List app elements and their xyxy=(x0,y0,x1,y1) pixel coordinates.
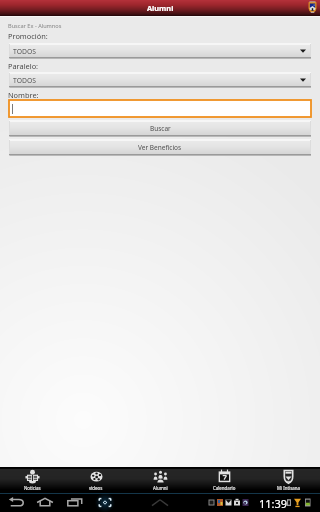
button[interactable]: Home xyxy=(33,495,57,510)
staticText: TODOS xyxy=(13,76,36,85)
staticText: Alumni xyxy=(147,3,174,13)
staticText: TODOS xyxy=(13,47,36,56)
button[interactable]: TODOS xyxy=(9,43,311,59)
button[interactable]: Screenshot xyxy=(93,495,117,510)
button[interactable]: Back xyxy=(4,495,28,510)
staticText: Alumni xyxy=(153,485,168,491)
button[interactable]: Mi Intisana xyxy=(256,467,320,493)
staticText: Mi Intisana xyxy=(277,485,300,491)
button[interactable]: Ver Beneficios xyxy=(9,139,311,156)
button[interactable]: TODOS xyxy=(9,72,311,88)
staticText: Promoción: xyxy=(8,31,48,41)
button[interactable]: Nombre xyxy=(9,100,311,117)
staticText: Buscar xyxy=(150,124,171,133)
staticText: videos xyxy=(89,485,103,491)
staticText: Nombre: xyxy=(8,90,39,100)
staticText: Paralelo: xyxy=(8,61,39,71)
button[interactable]: Alumni xyxy=(128,467,192,493)
button[interactable]: Calendario xyxy=(192,467,256,493)
staticText: 11:39 xyxy=(259,496,288,511)
staticText: Calendario xyxy=(213,485,236,491)
button[interactable]: Recent apps xyxy=(63,495,87,510)
button[interactable]: videos xyxy=(64,467,128,493)
staticText: Buscar Ex - Alumnos xyxy=(8,22,62,30)
button[interactable]: Buscar xyxy=(9,120,311,137)
button[interactable]: Intisana logo xyxy=(308,1,317,13)
staticText: Ver Beneficios xyxy=(138,143,182,152)
button[interactable]: Noticias xyxy=(0,467,64,493)
staticText: Noticias xyxy=(24,485,41,491)
